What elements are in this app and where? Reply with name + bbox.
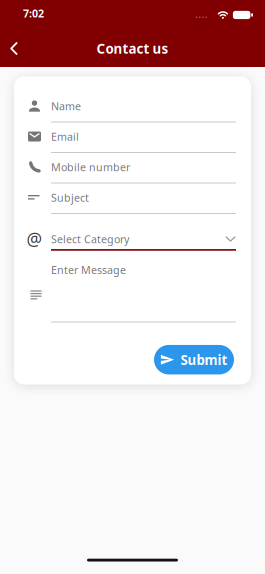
button[interactable]: Enter Message: [28, 251, 236, 322]
button[interactable]: Email: [28, 122, 236, 153]
button[interactable]: @: [28, 214, 236, 251]
staticText: Mobile number: [51, 160, 130, 174]
button[interactable]: [0, 30, 18, 67]
staticText: @: [26, 227, 42, 250]
staticText: Email: [51, 129, 79, 144]
button[interactable]: Mobile number: [28, 153, 236, 183]
staticText: Subject: [51, 190, 89, 205]
button[interactable]: Subject: [28, 183, 236, 214]
button[interactable]: Name: [28, 76, 236, 122]
staticText: Select Category: [51, 232, 129, 246]
staticText: Enter Message: [51, 263, 126, 277]
staticText: Contact us: [96, 40, 168, 57]
button[interactable]: Submit: [154, 345, 234, 374]
staticText: 7:02: [23, 6, 44, 20]
staticText: Submit: [180, 351, 227, 369]
staticText: Name: [51, 99, 81, 113]
